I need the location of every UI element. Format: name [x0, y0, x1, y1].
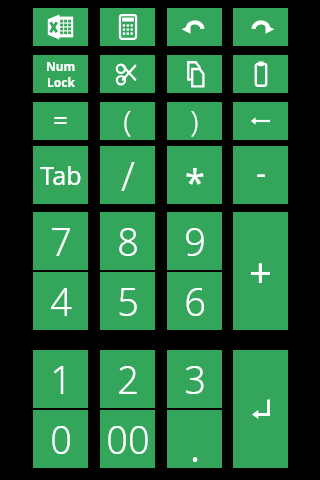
button[interactable]: 8	[100, 212, 155, 270]
staticText: 00	[106, 413, 150, 465]
button[interactable]: 0	[33, 410, 88, 468]
staticText: -	[256, 152, 266, 193]
button[interactable]: *	[167, 146, 222, 204]
button[interactable]: 6	[167, 272, 222, 330]
staticText: 4	[50, 275, 72, 327]
staticText: 7	[50, 215, 72, 267]
button[interactable]: /	[100, 146, 155, 204]
button[interactable]: Tab	[33, 146, 88, 204]
staticText: (	[123, 100, 132, 138]
staticText: Lock	[47, 74, 75, 90]
button[interactable]: 4	[33, 272, 88, 330]
staticText: 9	[184, 215, 206, 267]
button[interactable]: -	[233, 146, 288, 204]
staticText: 8	[117, 215, 139, 267]
button[interactable]: Redo	[233, 8, 288, 46]
staticText: )	[190, 100, 199, 138]
staticText: 5	[117, 275, 139, 327]
button[interactable]: (	[100, 102, 155, 140]
button[interactable]: Calculator	[100, 8, 155, 46]
button[interactable]: Backspace	[233, 102, 288, 140]
button[interactable]: 7	[33, 212, 88, 270]
staticText: *	[185, 157, 205, 206]
button[interactable]: .	[167, 410, 222, 468]
button[interactable]: Num	[33, 55, 88, 93]
button[interactable]: 3	[167, 350, 222, 408]
staticText: 0	[50, 413, 72, 465]
button[interactable]: Cut	[100, 55, 155, 93]
staticText: 2	[117, 353, 139, 405]
button[interactable]: Enter	[233, 350, 288, 468]
staticText: 1	[50, 353, 72, 405]
button[interactable]: Excel	[33, 8, 88, 46]
button[interactable]: =	[33, 102, 88, 140]
staticText: .	[190, 426, 200, 472]
button[interactable]: 9	[167, 212, 222, 270]
button[interactable]: Paste	[233, 55, 288, 93]
button[interactable]: 5	[100, 272, 155, 330]
button[interactable]: 1	[33, 350, 88, 408]
staticText: 3	[184, 353, 206, 405]
button[interactable]: Copy	[167, 55, 222, 93]
button[interactable]: Undo	[167, 8, 222, 46]
staticText: Tab	[40, 158, 82, 192]
staticText: =	[53, 102, 68, 137]
button[interactable]: +	[233, 212, 288, 330]
button[interactable]: )	[167, 102, 222, 140]
button[interactable]: 2	[100, 350, 155, 408]
staticText: +	[249, 244, 272, 298]
staticText: 6	[184, 275, 206, 327]
button[interactable]: 00	[100, 410, 155, 468]
staticText: /	[121, 148, 135, 202]
staticText: Num	[46, 58, 76, 74]
